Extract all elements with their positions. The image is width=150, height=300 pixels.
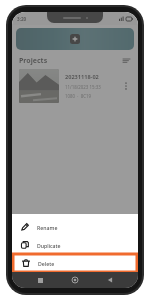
staticText: 1080 · 8C19 xyxy=(65,93,92,99)
staticText: 20231118-02 xyxy=(65,73,99,81)
button[interactable]: Rename xyxy=(12,218,138,236)
button[interactable]: Sort xyxy=(121,56,131,66)
staticText: 11/18/2023 15:33 xyxy=(65,84,101,90)
staticText: Rename xyxy=(37,224,58,231)
button[interactable]: More options xyxy=(121,81,131,91)
button[interactable]: 20231118-02 xyxy=(19,68,131,104)
button[interactable]: New project xyxy=(70,34,80,44)
button[interactable]: New project xyxy=(16,28,134,50)
staticText: 3:20 xyxy=(17,16,27,22)
staticText: Delete xyxy=(38,260,55,267)
button[interactable]: Back xyxy=(103,273,117,287)
button[interactable]: Duplicate xyxy=(12,236,138,254)
staticText: Projects xyxy=(19,56,48,66)
staticText: Duplicate xyxy=(37,242,61,249)
button[interactable]: Home xyxy=(68,273,82,287)
button[interactable]: Delete xyxy=(13,254,137,272)
button[interactable]: Recent apps xyxy=(33,273,47,287)
